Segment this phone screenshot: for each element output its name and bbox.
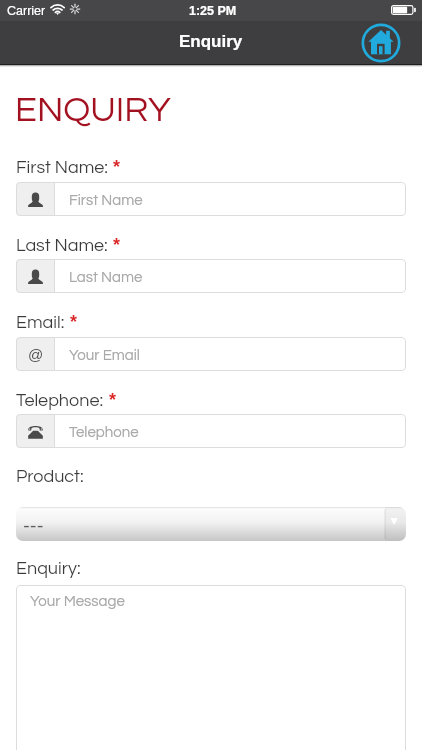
staticText: Last Name bbox=[69, 270, 143, 285]
staticText: Enquiry bbox=[179, 32, 243, 51]
staticText: * bbox=[113, 235, 121, 255]
button[interactable]: --- bbox=[16, 507, 406, 541]
staticText: --- bbox=[23, 516, 44, 536]
button[interactable]: Telephone bbox=[16, 414, 406, 448]
staticText: * bbox=[70, 312, 78, 332]
staticText: Product: bbox=[16, 467, 84, 486]
button[interactable]: First Name bbox=[16, 182, 406, 216]
staticText: ENQUIRY bbox=[15, 91, 171, 128]
staticText: Telephone: bbox=[16, 391, 104, 410]
button[interactable]: Home bbox=[361, 23, 401, 63]
staticText: @ bbox=[28, 346, 44, 363]
staticText: * bbox=[113, 157, 121, 177]
staticText: 1:25 PM bbox=[189, 4, 237, 18]
staticText: Enquiry: bbox=[16, 559, 81, 578]
staticText: First Name bbox=[69, 193, 143, 208]
button[interactable]: Your Message bbox=[16, 585, 406, 750]
staticText: Your Email bbox=[69, 348, 140, 363]
staticText: Email: bbox=[16, 313, 65, 332]
staticText: * bbox=[109, 390, 117, 410]
staticText: First Name: bbox=[16, 158, 108, 177]
staticText: Telephone bbox=[69, 425, 139, 440]
staticText: Carrier bbox=[7, 4, 46, 18]
button[interactable]: Last Name bbox=[16, 259, 406, 293]
staticText: Your Message bbox=[30, 594, 125, 609]
button[interactable]: @ bbox=[16, 337, 406, 371]
staticText: Last Name: bbox=[16, 236, 108, 255]
